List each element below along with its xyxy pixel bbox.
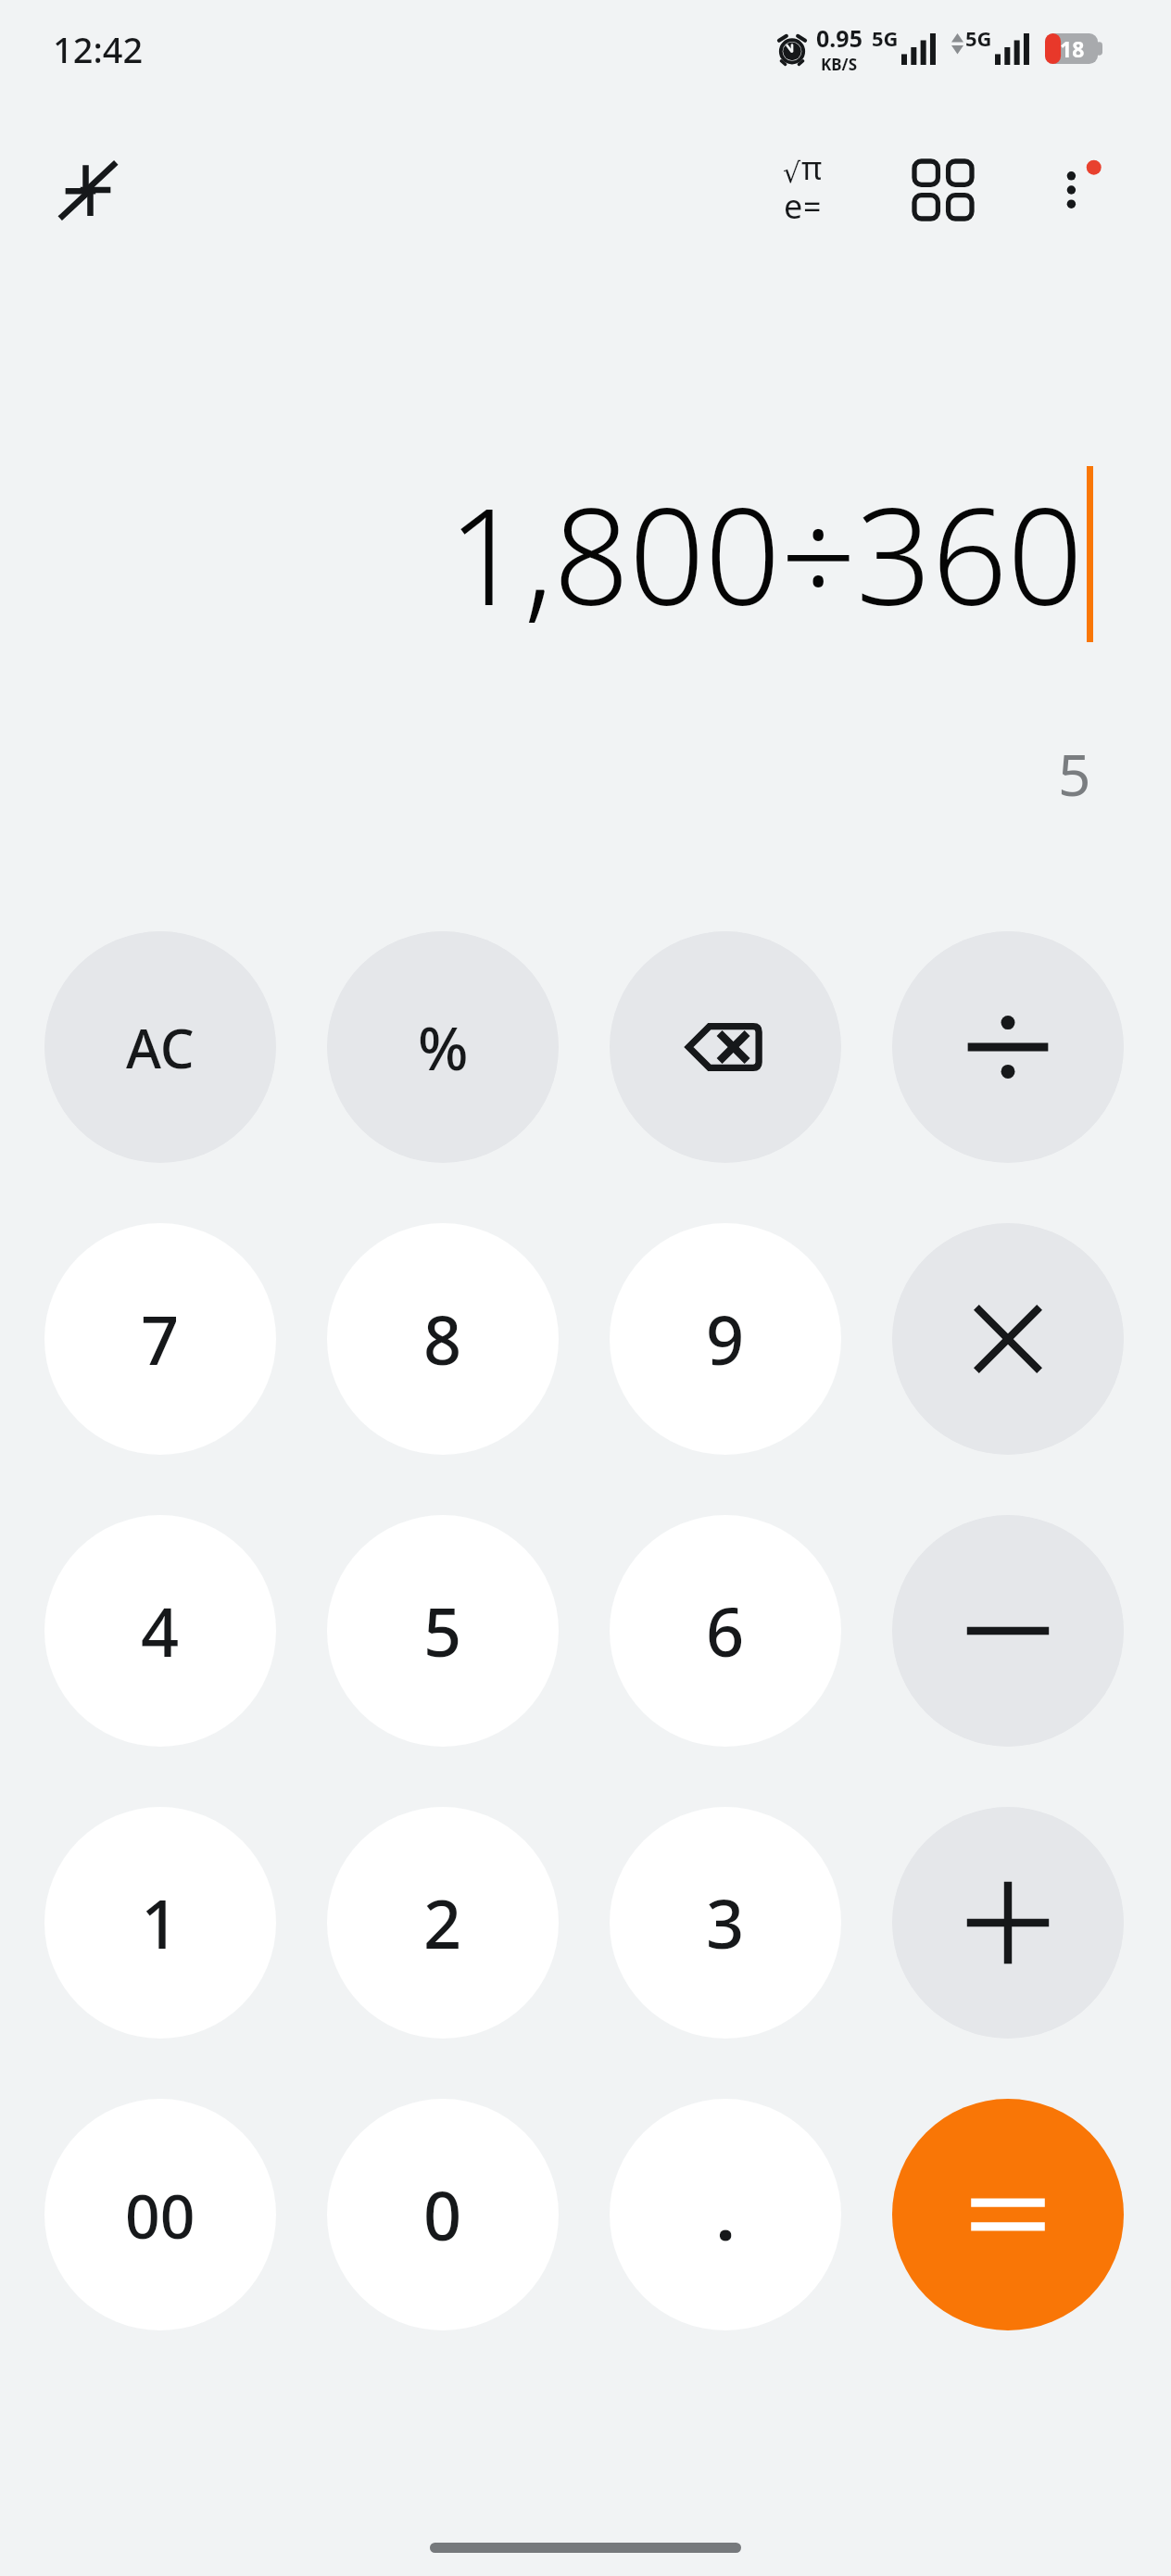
staticText: 3 [706,1877,745,1968]
button[interactable]: 6 [610,1515,841,1747]
button[interactable]: Scientific mode [747,134,858,246]
button[interactable]: . [610,2099,841,2330]
button[interactable]: Equals [892,2099,1124,2330]
staticText: 5 [1058,735,1091,813]
button[interactable]: Plus [892,1807,1124,2039]
button[interactable]: 7 [44,1223,276,1455]
button[interactable]: 0 [327,2099,559,2330]
button[interactable]: Minus [892,1515,1124,1747]
button[interactable]: 9 [610,1223,841,1455]
staticText: 00 [125,2173,195,2256]
staticText: 5G [965,24,992,52]
staticText: 0 [423,2169,462,2260]
staticText: 8 [423,1294,462,1384]
button[interactable]: 5 [327,1515,559,1747]
staticText: √ [783,157,801,189]
staticText: 1 [141,1877,180,1968]
button[interactable]: Multiply [892,1223,1124,1455]
staticText: e [784,183,803,229]
staticText: = [803,185,822,228]
staticText: 4 [141,1585,180,1676]
button[interactable]: 4 [44,1515,276,1747]
staticText: 7 [141,1294,180,1384]
button[interactable]: More options [1023,134,1134,246]
button[interactable]: History [888,134,999,246]
staticText: 1,800÷360 [447,463,1083,644]
button[interactable]: 8 [327,1223,559,1455]
button[interactable]: 1 [44,1807,276,2039]
staticText: 2 [423,1877,462,1968]
button[interactable]: % [327,931,559,1163]
button[interactable]: 3 [610,1807,841,2039]
button[interactable]: AC [44,931,276,1163]
staticText: 12:42 [53,25,144,73]
staticText: 5 [423,1585,462,1676]
staticText: 9 [706,1294,745,1384]
staticText: 6 [706,1585,745,1676]
button[interactable]: 00 [44,2099,276,2330]
button[interactable]: 2 [327,1807,559,2039]
staticText: AC [126,1011,195,1084]
staticText: 18 [1060,34,1085,63]
staticText: % [418,1007,469,1088]
button[interactable]: Backspace [610,931,841,1163]
staticText: π [801,146,823,189]
staticText: . [716,2169,736,2260]
staticText: 5G [872,24,899,52]
button[interactable]: Collapse [32,134,144,246]
staticText: 0.95 [816,22,863,54]
staticText: KB/S [821,54,858,75]
button[interactable]: Divide [892,931,1124,1163]
